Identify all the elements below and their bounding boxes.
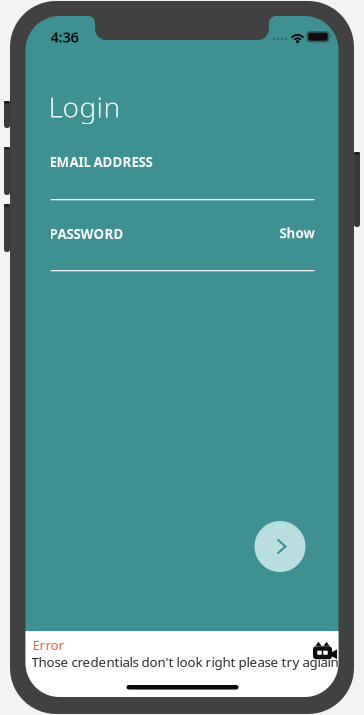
staticText: Error bbox=[32, 636, 64, 654]
staticText: Show bbox=[279, 224, 314, 242]
staticText: EMAIL ADDRESS bbox=[49, 153, 152, 171]
staticText: 4:36 bbox=[50, 27, 78, 46]
staticText: PASSWORD bbox=[49, 225, 123, 243]
button[interactable]: Continue bbox=[254, 521, 305, 572]
staticText: Those credentials don't look right pleas… bbox=[31, 653, 338, 671]
staticText: Login bbox=[48, 88, 120, 125]
button[interactable]: Show bbox=[221, 225, 314, 241]
